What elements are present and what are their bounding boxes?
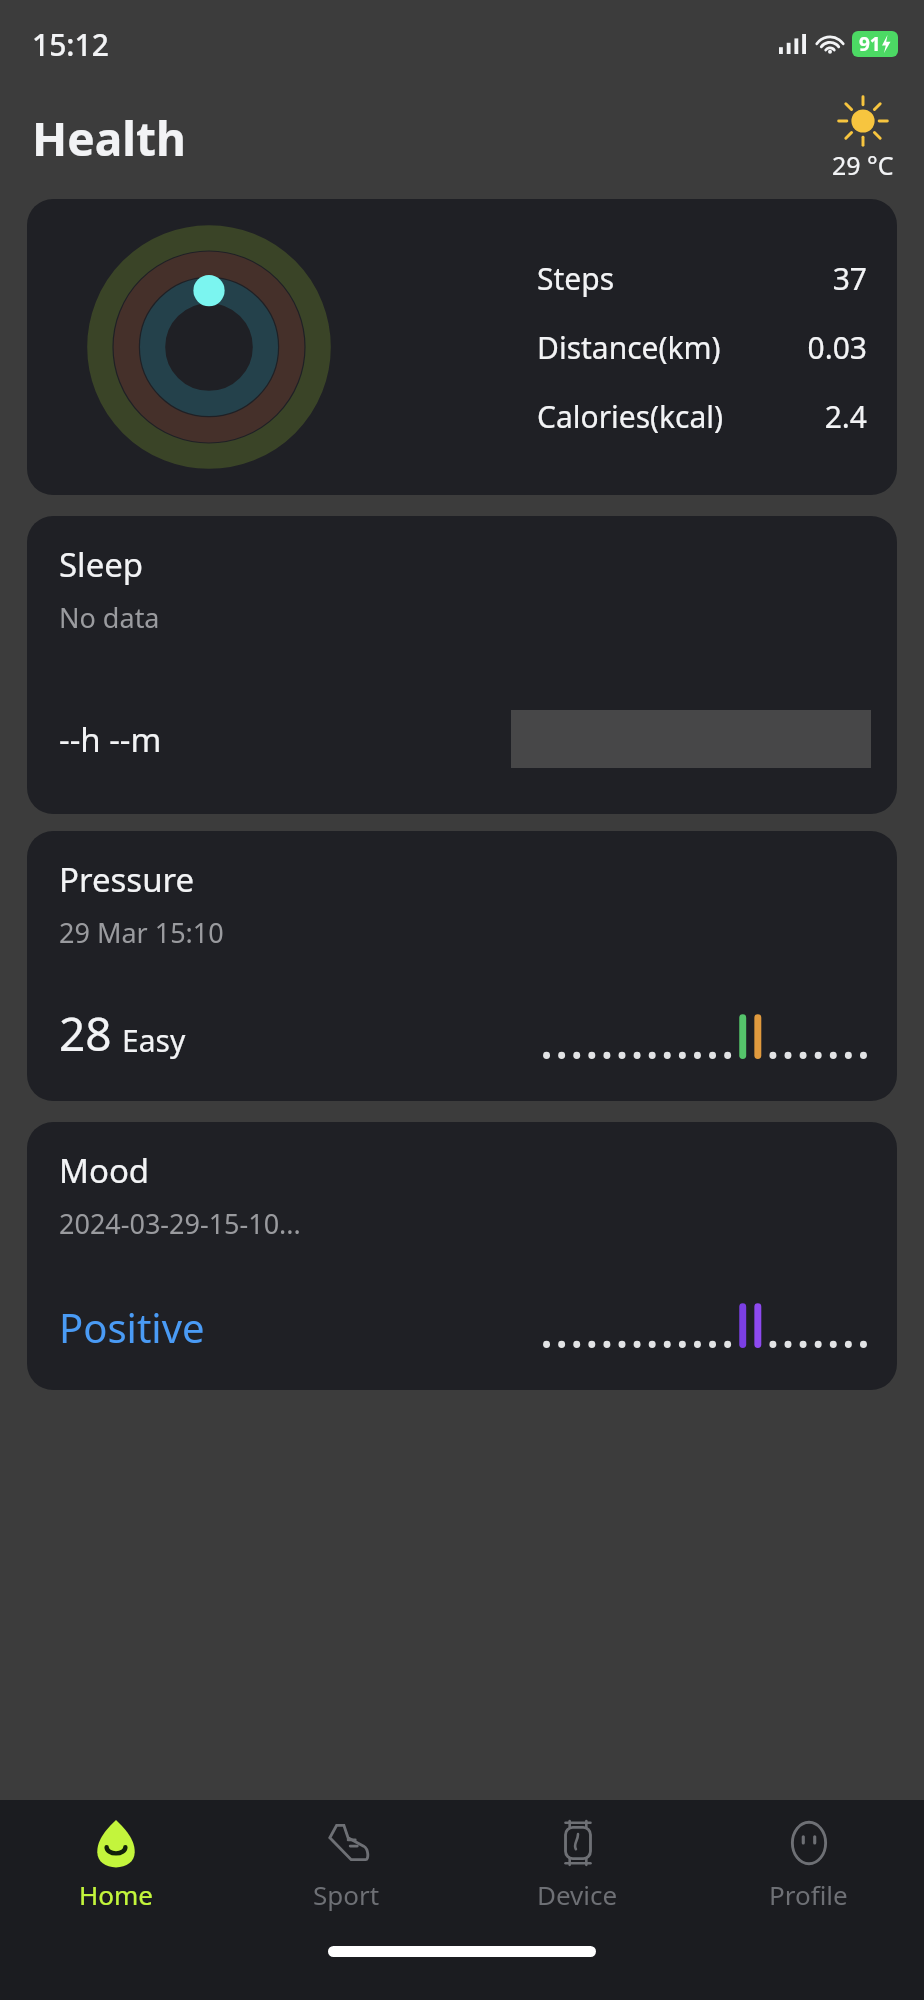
staticText: Steps	[537, 258, 832, 299]
button[interactable]: Sport	[231, 1800, 462, 1928]
staticText: Calories(kcal)	[537, 396, 824, 437]
button[interactable]: Weather 29 degrees	[832, 94, 894, 182]
staticText: 29 °C	[832, 148, 894, 182]
staticText: Positive	[59, 1300, 205, 1354]
button[interactable]: Steps	[27, 199, 897, 495]
staticText: No data	[59, 599, 160, 636]
button[interactable]: Pressure	[27, 831, 897, 1101]
staticText: 37	[832, 258, 867, 299]
staticText: 91	[859, 31, 881, 57]
staticText: Pressure	[59, 857, 195, 902]
staticText: 29 Mar 15:10	[59, 914, 224, 951]
button[interactable]: Mood	[27, 1122, 897, 1390]
button[interactable]: Device	[462, 1800, 693, 1928]
staticText: 2024-03-29-15-10...	[59, 1205, 301, 1242]
staticText: Health	[32, 107, 186, 170]
staticText: 15:12	[32, 24, 109, 65]
button[interactable]: Profile	[693, 1800, 924, 1928]
staticText: Sport	[313, 1877, 380, 1912]
staticText: Device	[537, 1877, 618, 1912]
staticText: 28	[59, 1002, 112, 1065]
staticText: Mood	[59, 1148, 150, 1193]
staticText: 2.4	[824, 396, 867, 437]
button[interactable]: Home	[0, 1800, 231, 1928]
staticText: 0.03	[807, 327, 867, 368]
button[interactable]: Sleep	[27, 516, 897, 814]
staticText: --h --m	[59, 717, 162, 762]
staticText: Home	[79, 1877, 153, 1912]
staticText: Sleep	[59, 542, 144, 587]
staticText: Distance(km)	[537, 327, 807, 368]
staticText: Profile	[769, 1877, 848, 1912]
staticText: Easy	[122, 1020, 186, 1061]
